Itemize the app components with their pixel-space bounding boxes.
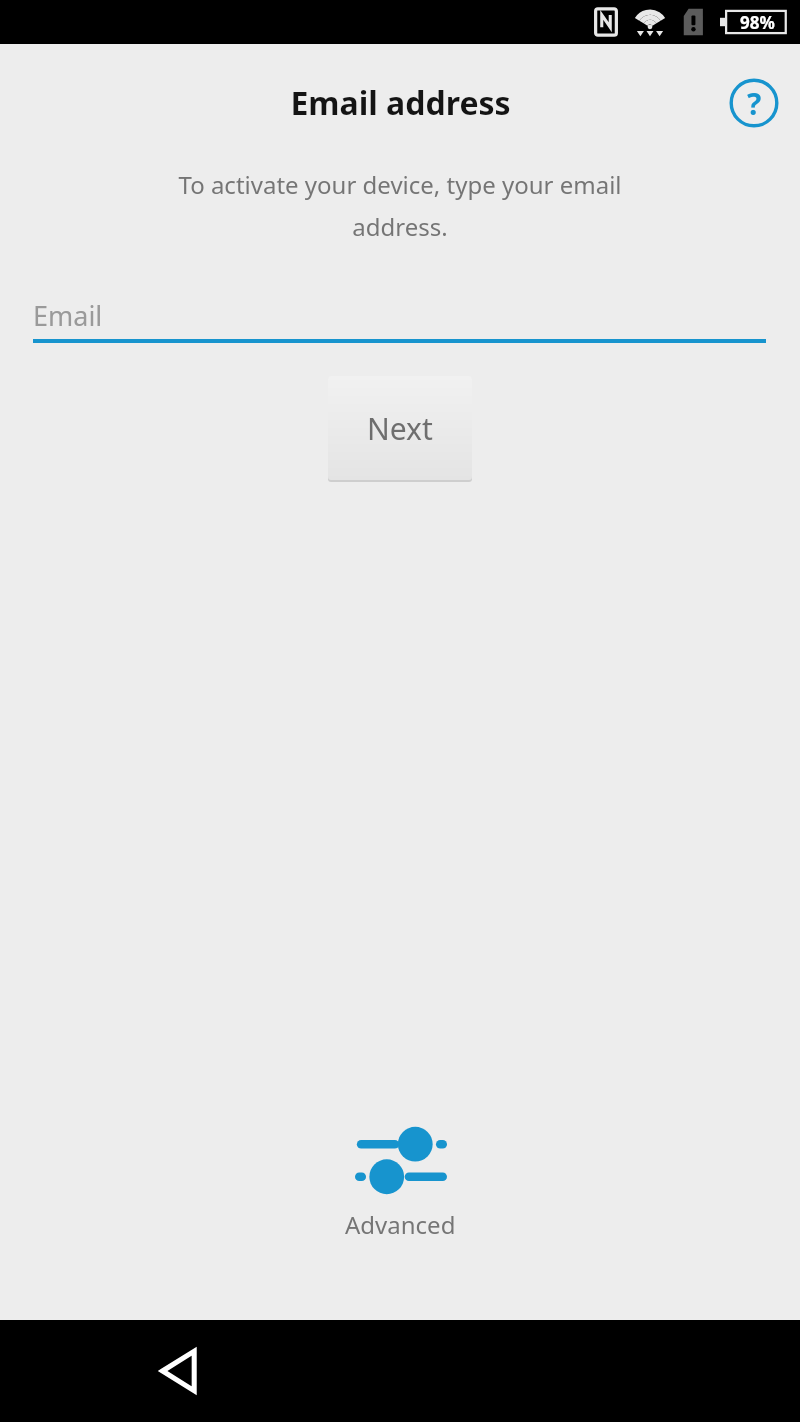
staticText: 98% <box>740 11 775 34</box>
staticText: Email <box>33 297 103 334</box>
button[interactable]: Advanced <box>345 1122 456 1241</box>
button[interactable]: Back <box>135 1325 227 1417</box>
button[interactable]: Next <box>327 374 473 481</box>
staticText: Email address <box>290 81 511 125</box>
staticText: ? <box>747 83 762 124</box>
button[interactable]: Help <box>726 75 782 131</box>
button[interactable]: Email <box>33 291 766 343</box>
staticText: Next <box>367 408 433 449</box>
staticText: Advanced <box>345 1208 456 1241</box>
staticText: To activate your device, type your email… <box>20 168 780 243</box>
